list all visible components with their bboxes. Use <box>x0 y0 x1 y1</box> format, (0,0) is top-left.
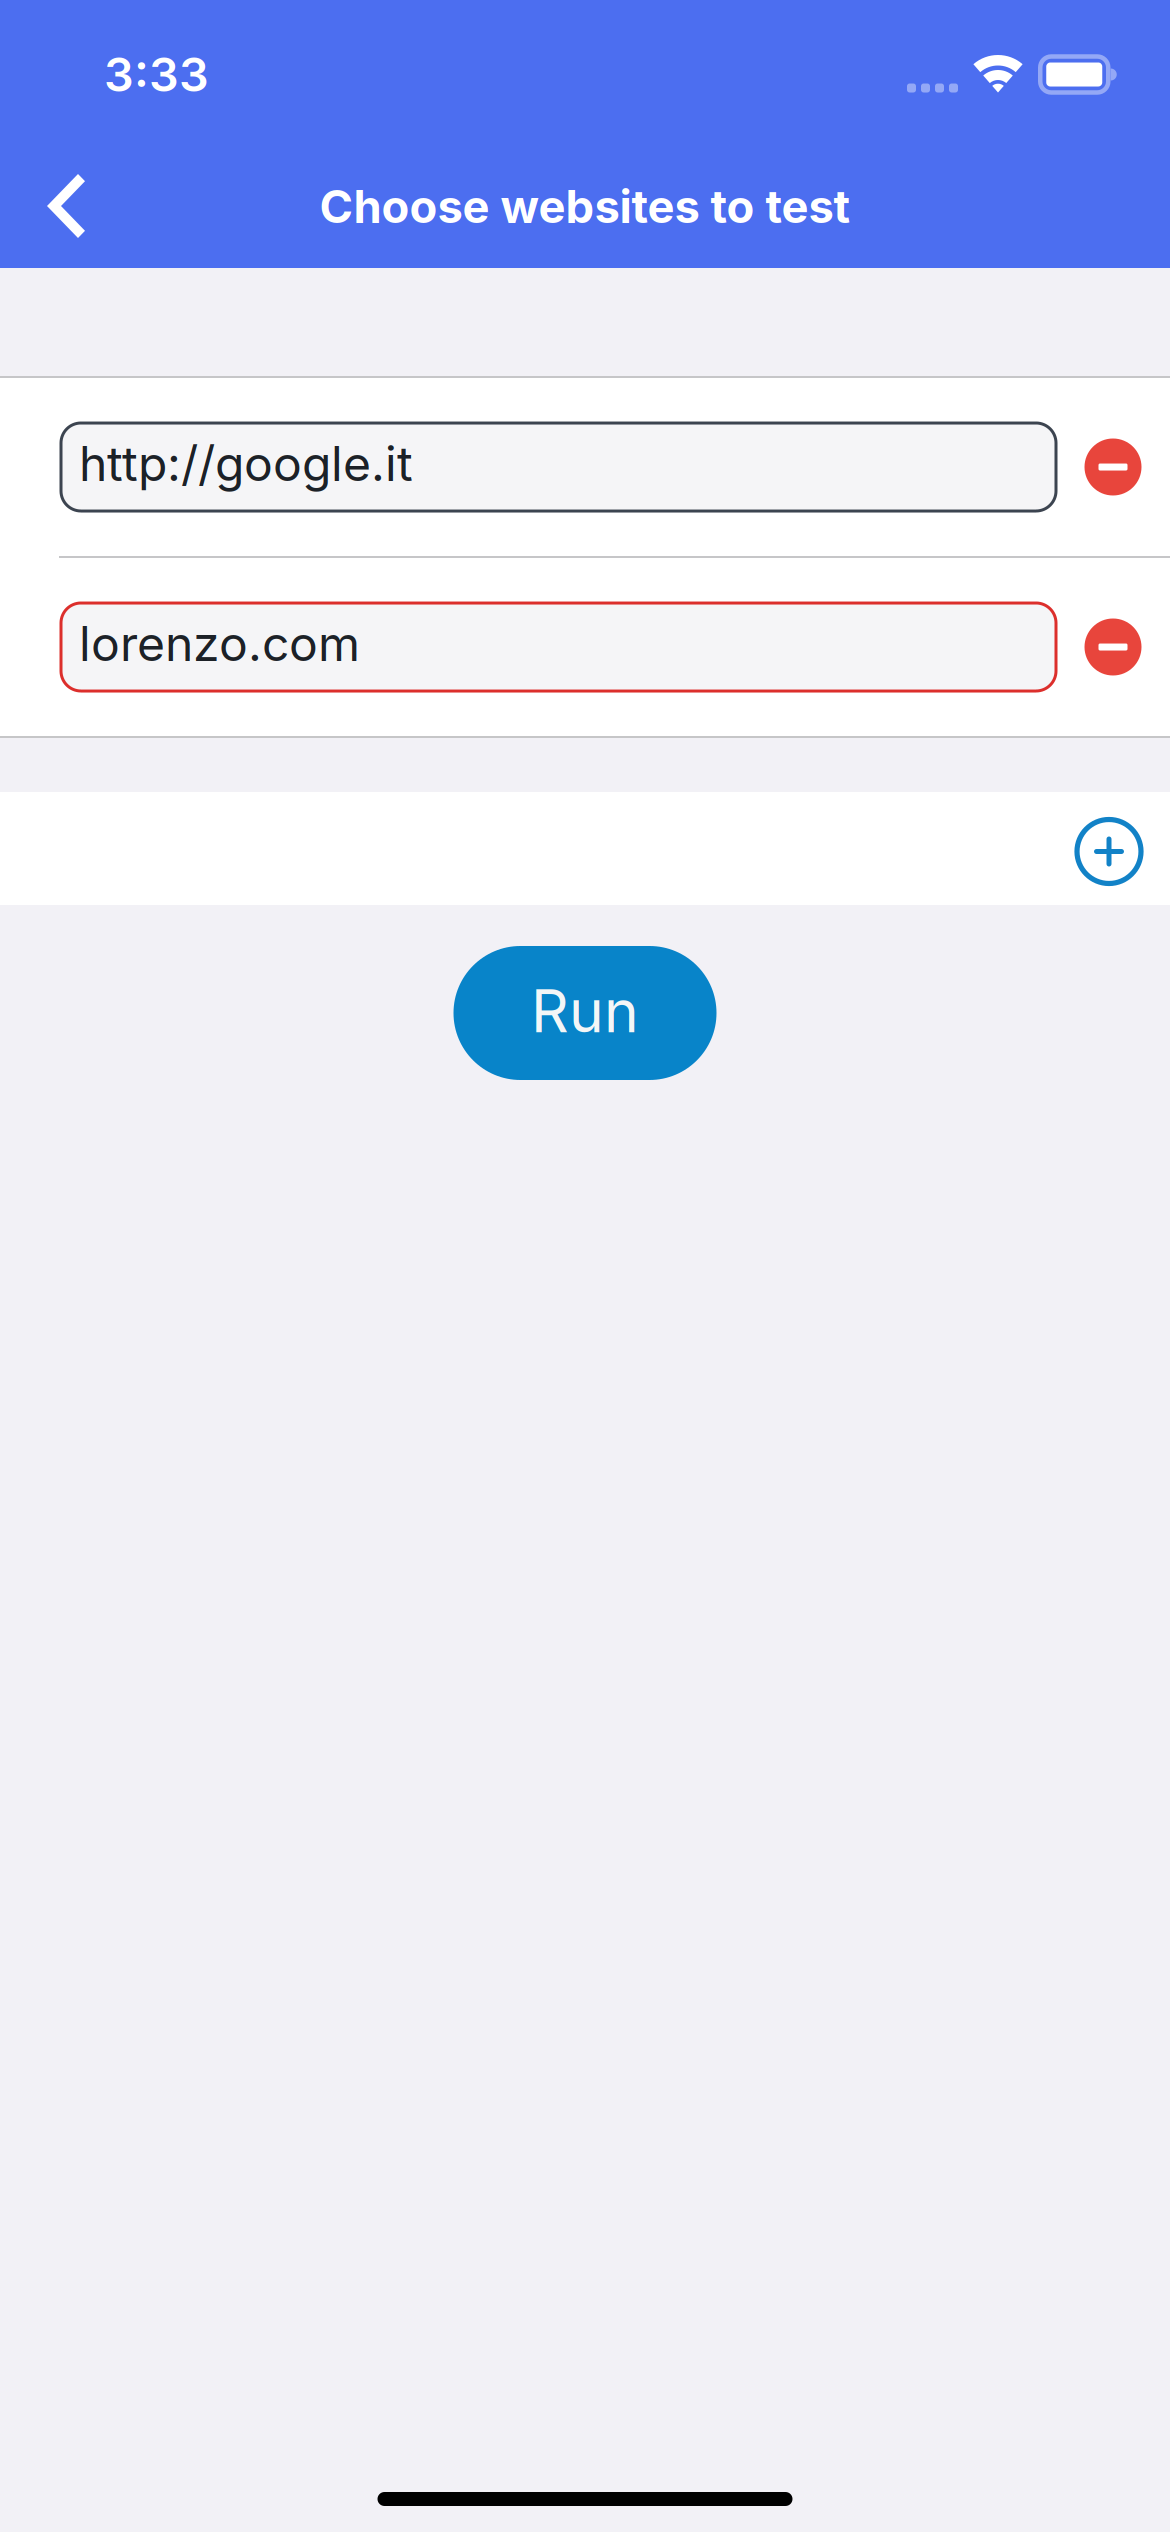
button[interactable]: Run <box>453 946 716 1080</box>
button[interactable]: Back <box>18 147 114 261</box>
staticText: Run <box>531 975 639 1046</box>
button[interactable]: Remove website <box>1070 598 1156 696</box>
staticText: 3:33 <box>104 46 209 103</box>
button[interactable]: Remove website <box>1070 418 1156 516</box>
button[interactable]: Add website <box>1057 790 1161 906</box>
button[interactable]: http://google.it <box>61 423 1056 511</box>
staticText: http://google.it <box>79 434 413 493</box>
staticText: Choose websites to test <box>319 179 850 234</box>
staticText: lorenzo.com <box>79 614 360 673</box>
button[interactable]: lorenzo.com <box>61 603 1056 691</box>
